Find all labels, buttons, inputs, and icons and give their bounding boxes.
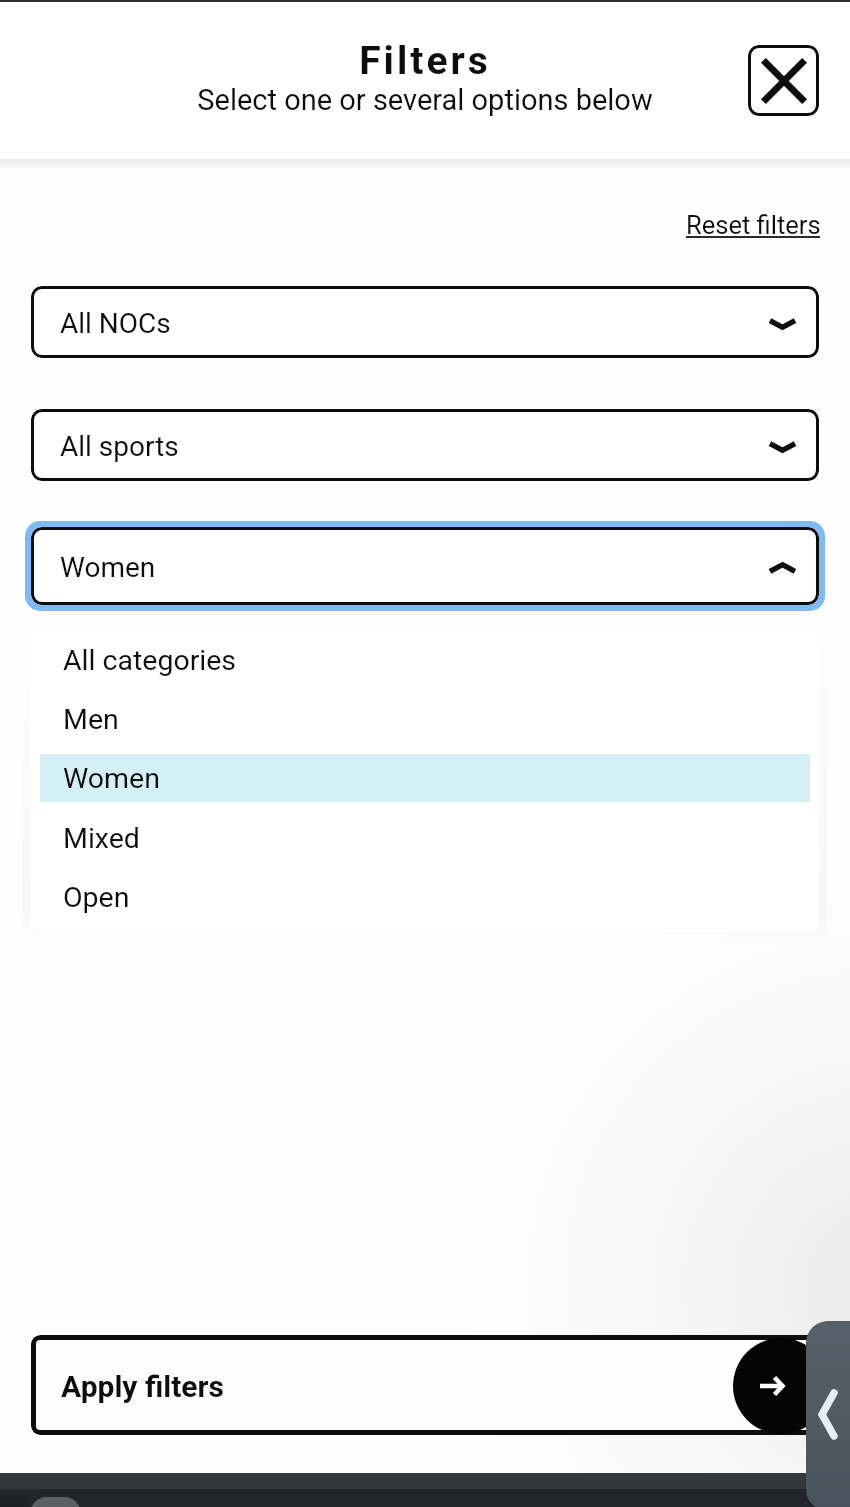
staticText: Select one or several options below [0, 83, 850, 117]
button[interactable]: Open [40, 873, 810, 921]
button[interactable]: Close [748, 45, 819, 116]
button[interactable]: Apply [733, 1338, 829, 1434]
button[interactable]: All NOCs [31, 286, 819, 358]
staticText: Reset filters [686, 210, 821, 240]
button[interactable]: Apply filters [31, 1335, 820, 1435]
staticText: All categories [63, 644, 237, 677]
staticText: Women [60, 551, 156, 584]
staticText: All NOCs [60, 307, 171, 340]
staticText: Filters [0, 38, 850, 84]
button[interactable]: All categories [40, 636, 810, 684]
button[interactable]: Mixed [40, 814, 810, 862]
staticText: Apply filters [61, 1369, 224, 1404]
button[interactable]: Reset filters [686, 210, 821, 240]
button[interactable]: Back [806, 1321, 850, 1507]
button[interactable]: Women [40, 754, 810, 802]
staticText: Men [63, 703, 119, 736]
staticText: All sports [60, 430, 179, 463]
button[interactable]: Women [31, 527, 819, 605]
button[interactable]: Men [40, 695, 810, 743]
staticText: Mixed [63, 822, 140, 855]
staticText: Open [63, 881, 130, 914]
button[interactable]: Women [31, 527, 819, 605]
button[interactable]: All sports [31, 409, 819, 481]
staticText: Women [63, 762, 160, 795]
